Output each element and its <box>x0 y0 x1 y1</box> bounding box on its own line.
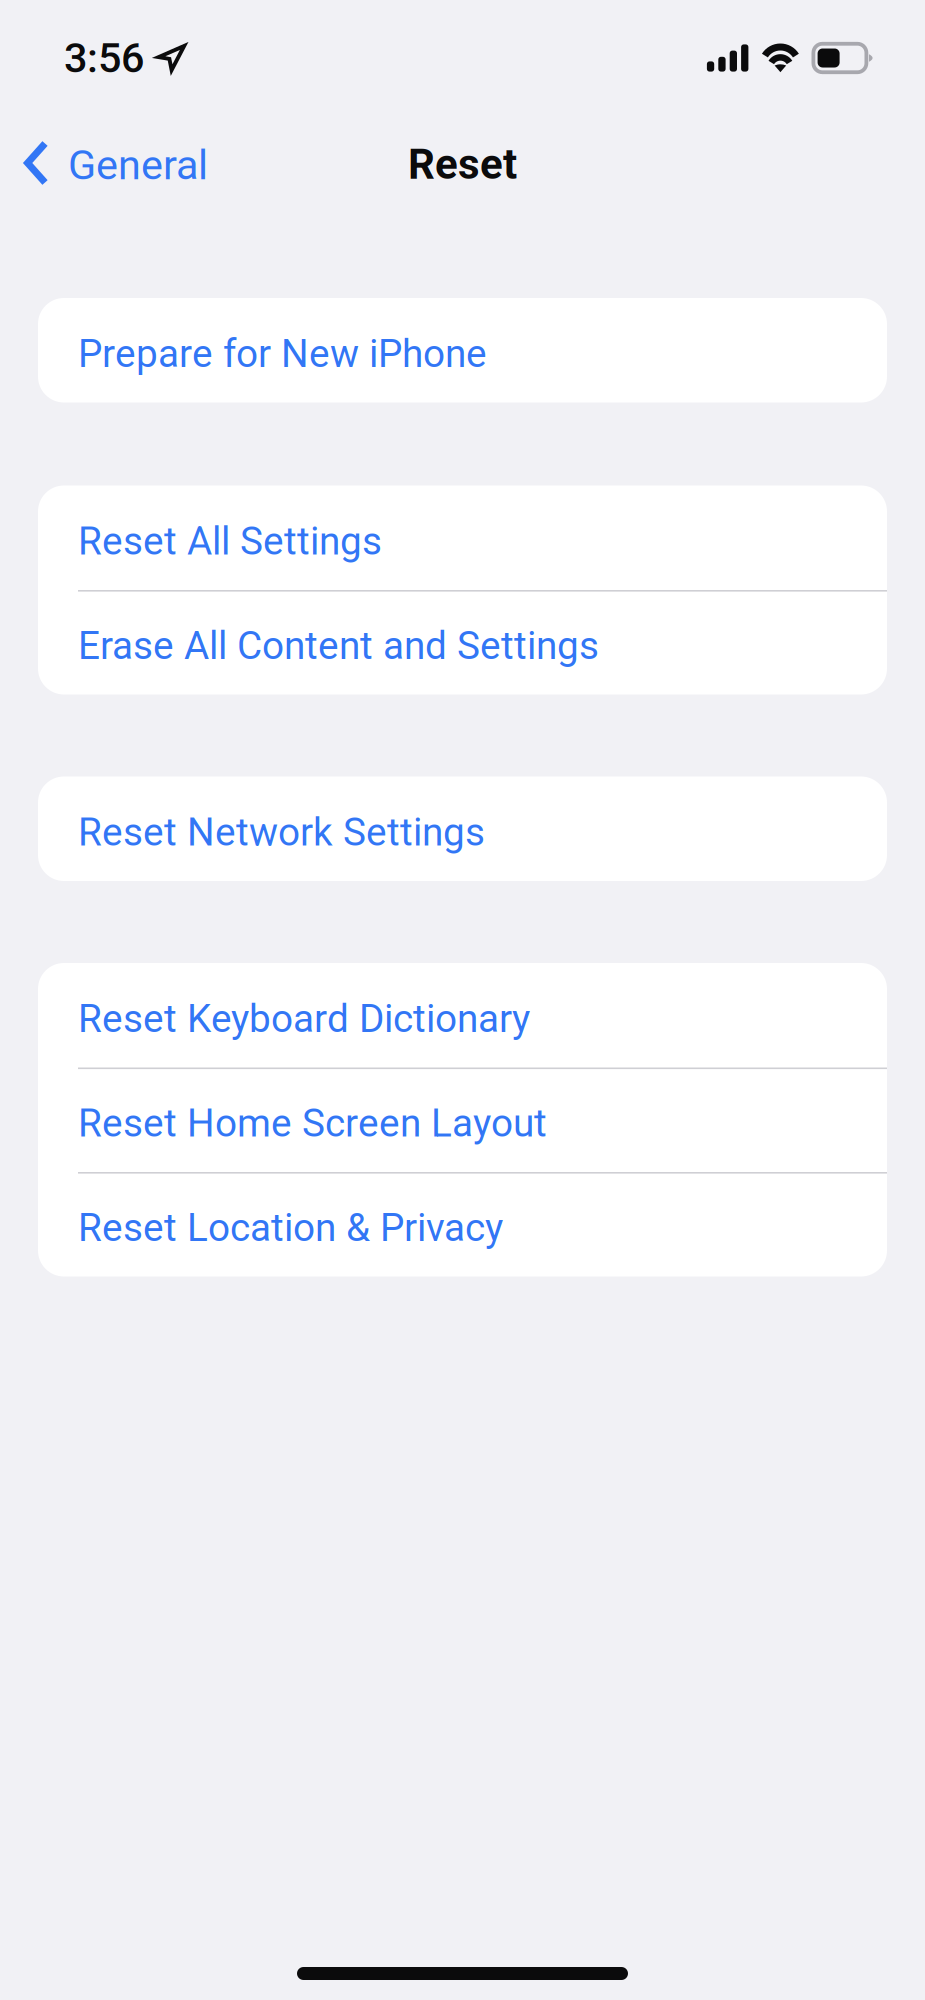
staticText: Prepare for New iPhone <box>78 331 487 376</box>
button[interactable]: Reset Home Screen Layout <box>38 1067 887 1172</box>
staticText: Reset Network Settings <box>78 810 485 855</box>
staticText: Reset Home Screen Layout <box>78 1101 547 1146</box>
staticText: 3:56 <box>64 34 144 82</box>
button[interactable]: Prepare for New iPhone <box>38 298 887 402</box>
staticText: Reset Keyboard Dictionary <box>78 996 530 1041</box>
staticText: Erase All Content and Settings <box>78 623 599 668</box>
button[interactable]: Reset Network Settings <box>38 776 887 881</box>
button[interactable]: Erase All Content and Settings <box>38 590 887 694</box>
button[interactable]: Reset All Settings <box>38 485 887 590</box>
button[interactable]: Back to General <box>0 127 224 199</box>
button[interactable]: Reset Location & Privacy <box>38 1172 887 1276</box>
button[interactable]: Reset Keyboard Dictionary <box>38 963 887 1067</box>
staticText: Reset Location & Privacy <box>78 1205 503 1250</box>
staticText: Reset All Settings <box>78 519 382 564</box>
staticText: Reset <box>408 140 517 189</box>
staticText: General <box>68 141 208 189</box>
